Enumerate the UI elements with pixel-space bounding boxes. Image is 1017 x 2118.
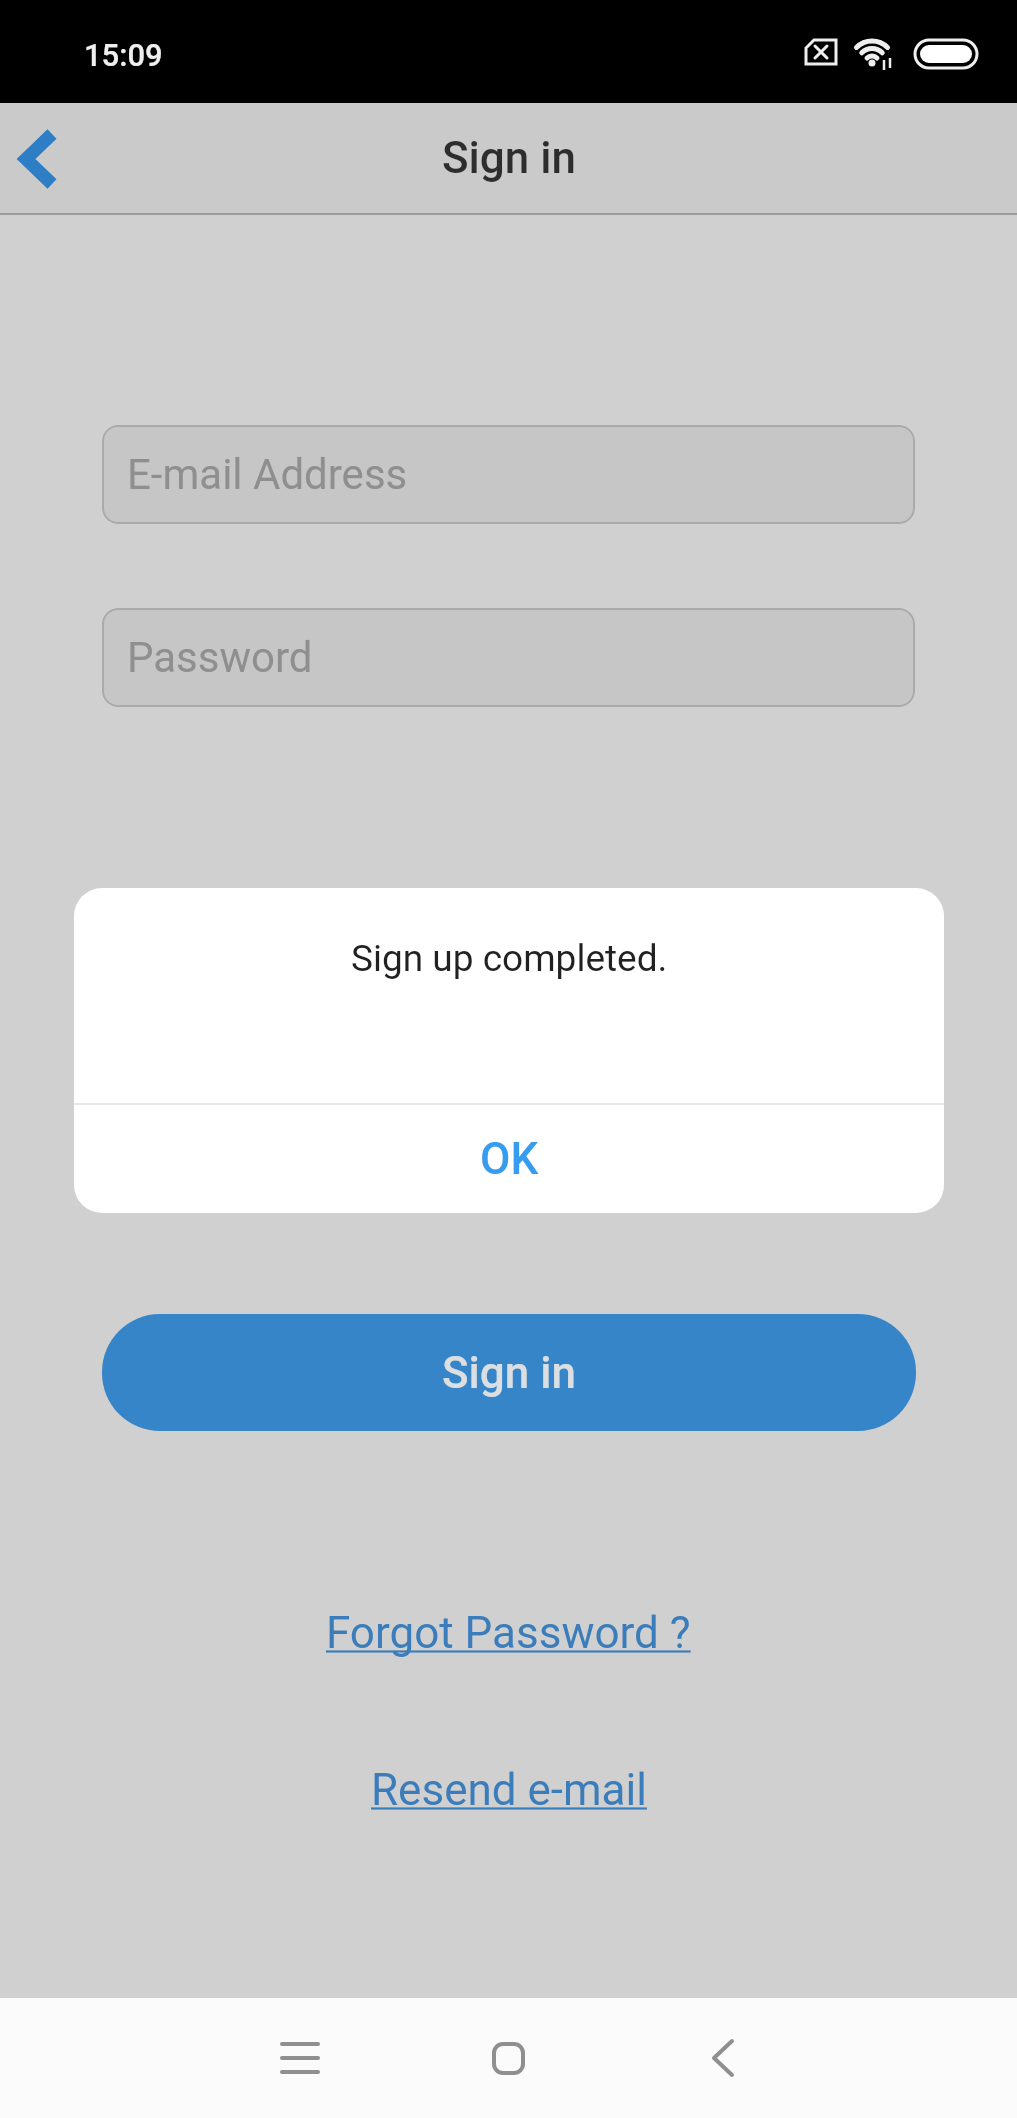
button[interactable] [470, 2020, 546, 2096]
button[interactable]: Sign in [102, 1314, 916, 1431]
staticText: E-mail Address [127, 450, 408, 499]
staticText: Password [127, 633, 313, 682]
staticText: Sign up completed. [351, 937, 668, 980]
button[interactable]: Resend e-mail [371, 1760, 647, 1820]
button[interactable] [685, 2020, 761, 2096]
staticText: OK [480, 1133, 539, 1185]
staticText: Resend e-mail [371, 1764, 647, 1816]
button[interactable]: Forgot Password ? [326, 1603, 691, 1663]
button[interactable]: Password [102, 608, 915, 707]
staticText: Sign in [442, 1347, 576, 1399]
button[interactable] [8, 119, 68, 199]
button[interactable] [262, 2020, 338, 2096]
staticText: 15:09 [84, 37, 163, 73]
staticText: Sign in [442, 132, 576, 184]
button[interactable]: OK [74, 1105, 944, 1213]
staticText: Forgot Password ? [326, 1607, 691, 1659]
button[interactable]: E-mail Address [102, 425, 915, 524]
